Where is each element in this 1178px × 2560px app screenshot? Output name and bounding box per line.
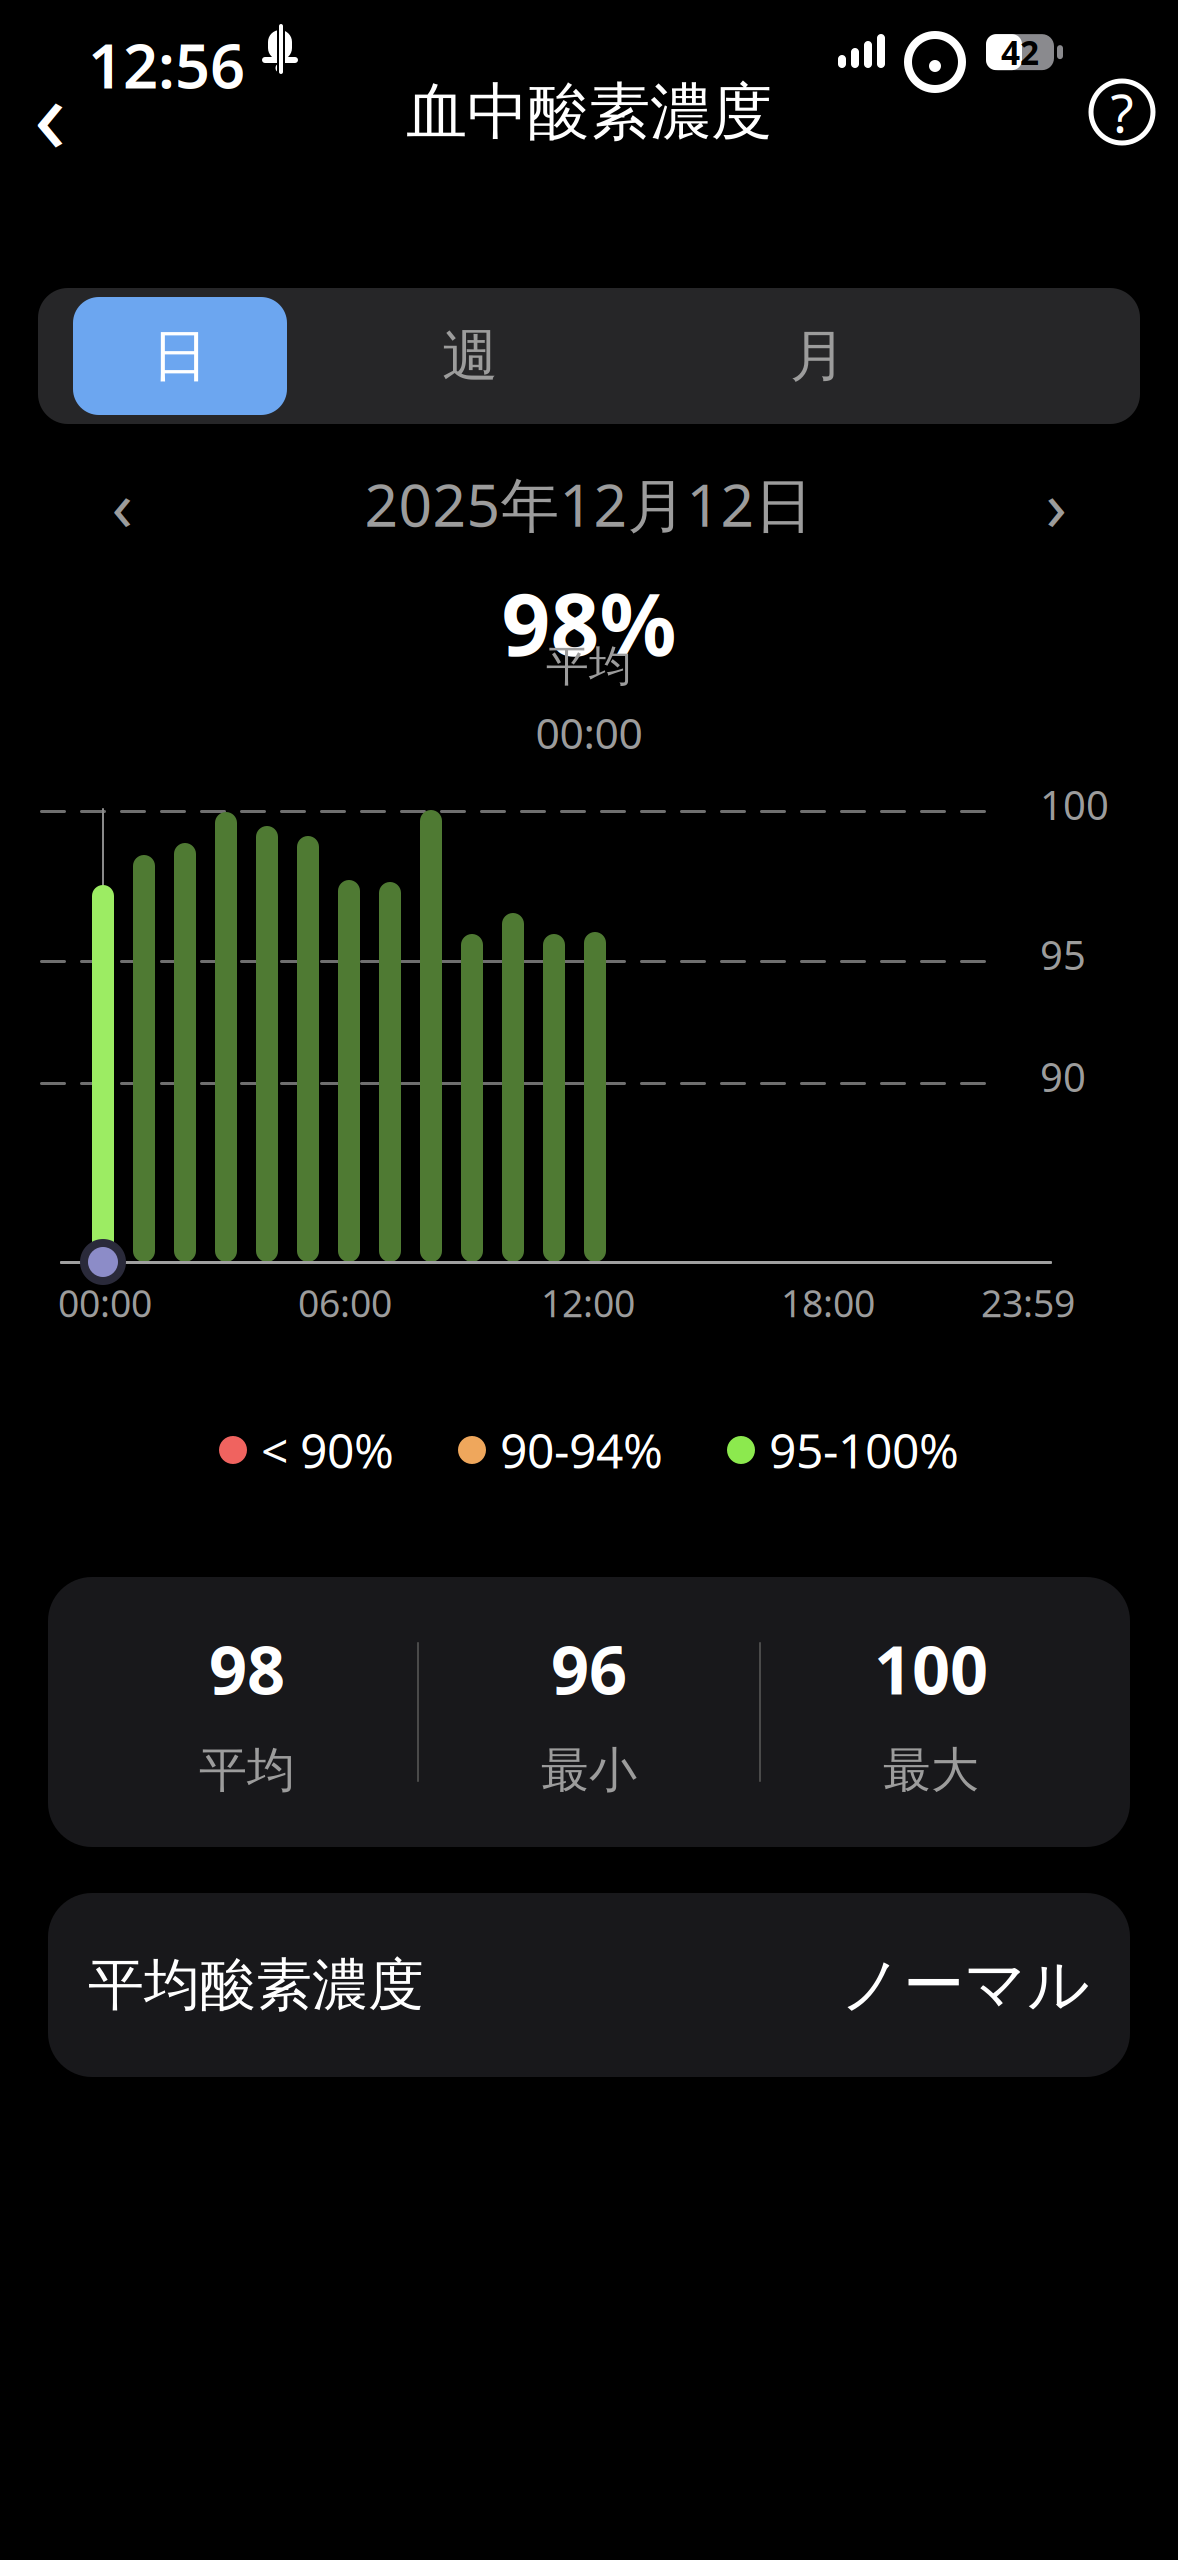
staticText: < 90%: [261, 1418, 394, 1482]
button[interactable]: 戻る: [0, 62, 100, 162]
button[interactable]: ヘルプ: [1072, 62, 1172, 162]
staticText: ?: [1110, 77, 1133, 147]
staticText: 06:00: [298, 1278, 392, 1328]
button[interactable]: 前の日: [74, 456, 170, 552]
staticText: 95-100%: [769, 1418, 959, 1482]
staticText: ‹: [33, 41, 66, 183]
staticText: 98%: [501, 566, 676, 679]
staticText: 90-94%: [500, 1418, 663, 1482]
staticText: 週: [442, 322, 498, 390]
staticText: 18:00: [781, 1278, 875, 1328]
staticText: ›: [1045, 458, 1066, 550]
button[interactable]: 日: [73, 297, 287, 415]
staticText: 98: [209, 1624, 285, 1713]
staticText: 最小: [541, 1741, 637, 1800]
staticText: 平均酸素濃度: [88, 1951, 424, 2019]
staticText: 日: [152, 322, 208, 390]
staticText: 2025年12月12日: [364, 465, 813, 543]
staticText: 最大: [883, 1741, 979, 1800]
button[interactable]: 次の日: [1008, 456, 1104, 552]
staticText: 00:00: [58, 1278, 152, 1328]
staticText: 平均: [199, 1741, 295, 1800]
staticText: 月: [790, 322, 846, 390]
staticText: 96: [551, 1624, 627, 1713]
staticText: 42: [1001, 30, 1039, 74]
staticText: 95: [1040, 928, 1086, 981]
staticText: 12:56: [88, 24, 245, 105]
button[interactable]: 週: [300, 288, 640, 424]
staticText: 90: [1040, 1050, 1086, 1103]
staticText: 12:00: [541, 1278, 635, 1328]
button[interactable]: 月: [648, 288, 988, 424]
staticText: 100: [1040, 778, 1109, 831]
button[interactable]: 平均酸素濃度: [48, 1893, 1130, 2077]
staticText: 00:00: [535, 704, 642, 761]
staticText: 血中酸素濃度: [406, 74, 772, 150]
staticText: ‹: [111, 458, 132, 550]
staticText: ノーマル: [840, 1947, 1090, 2023]
staticText: 平均: [546, 640, 632, 692]
staticText: 23:59: [981, 1278, 1075, 1328]
staticText: 100: [874, 1624, 988, 1713]
